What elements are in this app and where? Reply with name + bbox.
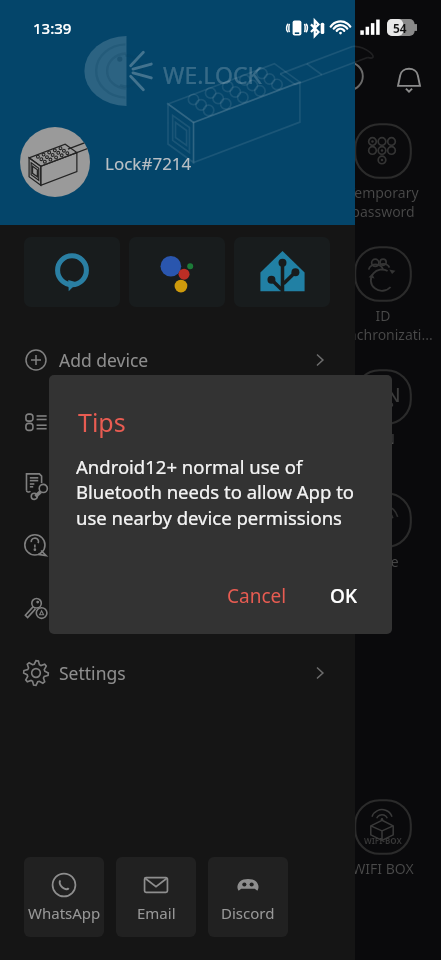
staticText: WIFI BOX [352,859,414,878]
staticText: Cancel [227,583,287,609]
button[interactable]: Email [116,857,196,937]
button[interactable]: Temporary password [324,123,441,221]
staticText: Device list [59,410,142,434]
button[interactable]: Home Assistant [234,237,330,307]
button[interactable]: Device list [0,391,355,453]
button[interactable]: WIFI-BOX [324,799,441,878]
staticText: Android12+ normal use of Bluetooth needs… [76,454,357,531]
button[interactable]: Messages [326,56,372,102]
staticText: WhatsApp [28,903,101,923]
staticText: Discord [221,903,275,923]
staticText: Operation record [59,472,201,496]
staticText: Time [366,552,399,571]
button[interactable]: Operation record [0,453,355,515]
button[interactable]: Google Assistant [129,237,225,307]
button[interactable]: Device avatar [20,127,90,197]
button[interactable]: PIN [324,369,441,448]
staticText: OK [330,583,357,609]
button[interactable]: Cancel [215,571,299,621]
button[interactable]: Discord [208,857,288,937]
button[interactable]: Settings [0,642,355,704]
button[interactable]: Notifications [387,56,431,100]
button[interactable]: Key management [0,577,355,639]
staticText: Settings [59,661,126,685]
button[interactable]: WhatsApp [24,857,104,937]
staticText: Tips [78,405,126,439]
staticText: 54 [393,20,407,36]
staticText: WE.LOCK [163,59,262,90]
staticText: PIN [371,429,395,448]
button[interactable]: ID Synchronizati... [324,246,441,344]
button[interactable]: Time [324,492,441,571]
button[interactable]: Alexa [24,237,120,307]
staticText: Temporary password [347,183,419,221]
button[interactable]: Add device [0,329,355,391]
staticText: PIN [366,381,401,408]
button[interactable]: Help [0,515,355,577]
staticText: ID Synchronizati... [333,306,433,344]
staticText: Lock#7214 [105,152,192,175]
staticText: Email [137,903,176,923]
staticText: WIFI-BOX [364,835,402,846]
button[interactable]: OK [318,571,369,621]
staticText: 13:39 [33,18,72,38]
staticText: Add device [59,348,149,372]
